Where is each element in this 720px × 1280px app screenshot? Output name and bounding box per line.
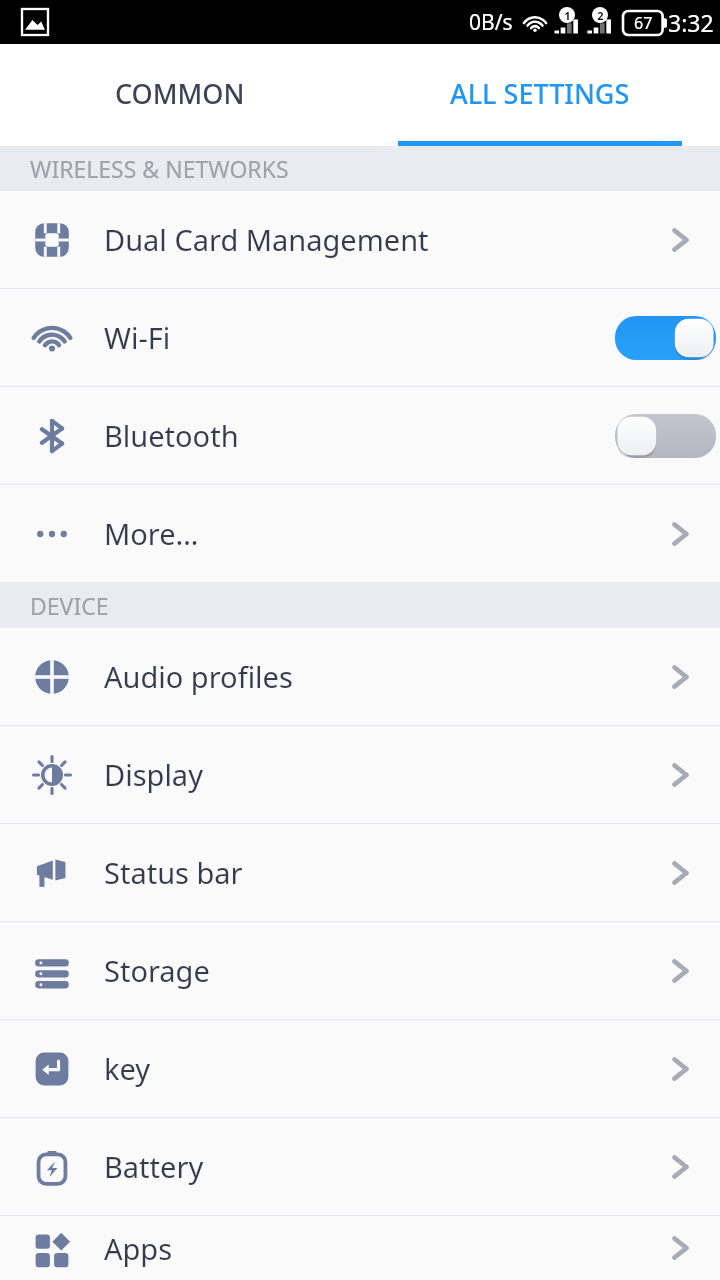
staticText: key	[104, 1049, 640, 1088]
staticText: 0B/s	[469, 8, 513, 37]
button[interactable]: Battery	[0, 1118, 720, 1215]
staticText: Battery	[104, 1147, 640, 1186]
button[interactable]: More…	[0, 485, 720, 582]
button[interactable]: Toggle off	[615, 414, 716, 458]
staticText: Status bar	[104, 853, 640, 892]
staticText: Bluetooth	[104, 416, 610, 455]
staticText: 67	[634, 12, 653, 34]
staticText: Display	[104, 755, 640, 794]
button[interactable]: Status bar	[0, 824, 720, 921]
button[interactable]: Apps	[0, 1216, 720, 1280]
staticText: 2	[597, 8, 604, 23]
button[interactable]: Storage	[0, 922, 720, 1019]
staticText: DEVICE	[30, 590, 109, 621]
staticText: Wi-Fi	[104, 318, 610, 357]
staticText: 1	[564, 8, 571, 23]
staticText: 3:32	[668, 7, 714, 38]
button[interactable]: Display	[0, 726, 720, 823]
button[interactable]: Audio profiles	[0, 628, 720, 725]
button[interactable]: Toggle on	[615, 316, 716, 360]
staticText: Audio profiles	[104, 657, 640, 696]
staticText: More…	[104, 514, 640, 553]
staticText: WIRELESS & NETWORKS	[30, 153, 289, 184]
button[interactable]: Wi-Fi	[0, 289, 720, 386]
button[interactable]: Dual Card Management	[0, 191, 720, 288]
staticText: ALL SETTINGS	[450, 75, 630, 112]
staticText: Dual Card Management	[104, 220, 640, 259]
button[interactable]: COMMON	[0, 44, 360, 146]
staticText: Storage	[104, 951, 640, 990]
staticText: Apps	[104, 1229, 640, 1268]
button[interactable]: Bluetooth	[0, 387, 720, 484]
button[interactable]: ALL SETTINGS	[360, 44, 720, 146]
button[interactable]: key	[0, 1020, 720, 1117]
staticText: COMMON	[115, 75, 245, 112]
